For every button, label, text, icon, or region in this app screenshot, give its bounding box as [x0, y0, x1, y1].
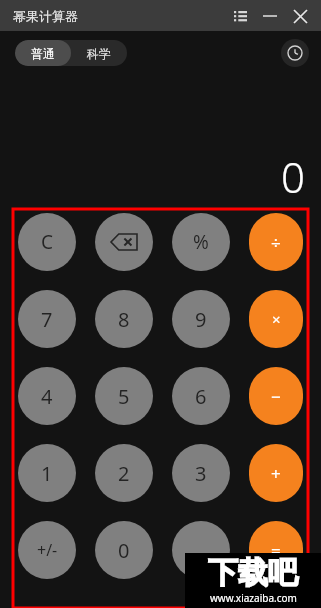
button[interactable]: 5: [95, 367, 153, 425]
button[interactable]: .: [172, 521, 230, 579]
staticText: 3: [195, 460, 207, 487]
button[interactable]: 1: [18, 444, 76, 502]
staticText: 5: [118, 383, 130, 410]
staticText: 普通: [31, 46, 55, 61]
button[interactable]: ×: [249, 290, 303, 348]
button[interactable]: Minimize: [255, 1, 285, 31]
button[interactable]: +: [249, 444, 303, 502]
button[interactable]: 0: [95, 521, 153, 579]
staticText: 科学: [87, 46, 111, 61]
button[interactable]: Close: [285, 1, 315, 31]
staticText: 6: [195, 383, 207, 410]
staticText: 9: [195, 306, 207, 333]
button[interactable]: −: [249, 367, 303, 425]
staticText: 7: [41, 306, 53, 333]
staticText: .: [198, 537, 204, 564]
button[interactable]: 8: [95, 290, 153, 348]
staticText: =: [271, 539, 281, 562]
button[interactable]: 科学: [71, 40, 127, 66]
button[interactable]: +/-: [18, 521, 76, 579]
staticText: −: [271, 385, 281, 408]
button[interactable]: C: [18, 213, 76, 271]
staticText: 幂果计算器: [13, 8, 78, 24]
button[interactable]: =: [249, 521, 303, 579]
staticText: 2: [118, 460, 130, 487]
staticText: ×: [272, 309, 281, 329]
button[interactable]: 3: [172, 444, 230, 502]
button[interactable]: ÷: [249, 213, 303, 271]
staticText: 下载吧: [208, 554, 298, 592]
staticText: %: [193, 229, 209, 255]
button[interactable]: 6: [172, 367, 230, 425]
button[interactable]: Backspace: [95, 213, 153, 271]
button[interactable]: 普通: [15, 40, 71, 66]
staticText: +/-: [37, 539, 58, 561]
staticText: www.xiazaiba.com: [210, 591, 297, 605]
button[interactable]: %: [172, 213, 230, 271]
staticText: 4: [41, 383, 53, 410]
staticText: C: [41, 229, 54, 255]
staticText: 0: [281, 148, 305, 205]
staticText: 8: [118, 306, 130, 333]
button[interactable]: Menu: [225, 1, 255, 31]
staticText: +: [271, 462, 281, 485]
button[interactable]: 7: [18, 290, 76, 348]
staticText: 1: [41, 460, 53, 487]
button[interactable]: 4: [18, 367, 76, 425]
staticText: ÷: [271, 231, 281, 254]
button[interactable]: 9: [172, 290, 230, 348]
button[interactable]: 2: [95, 444, 153, 502]
button[interactable]: History: [281, 39, 309, 67]
staticText: 0: [118, 537, 130, 564]
